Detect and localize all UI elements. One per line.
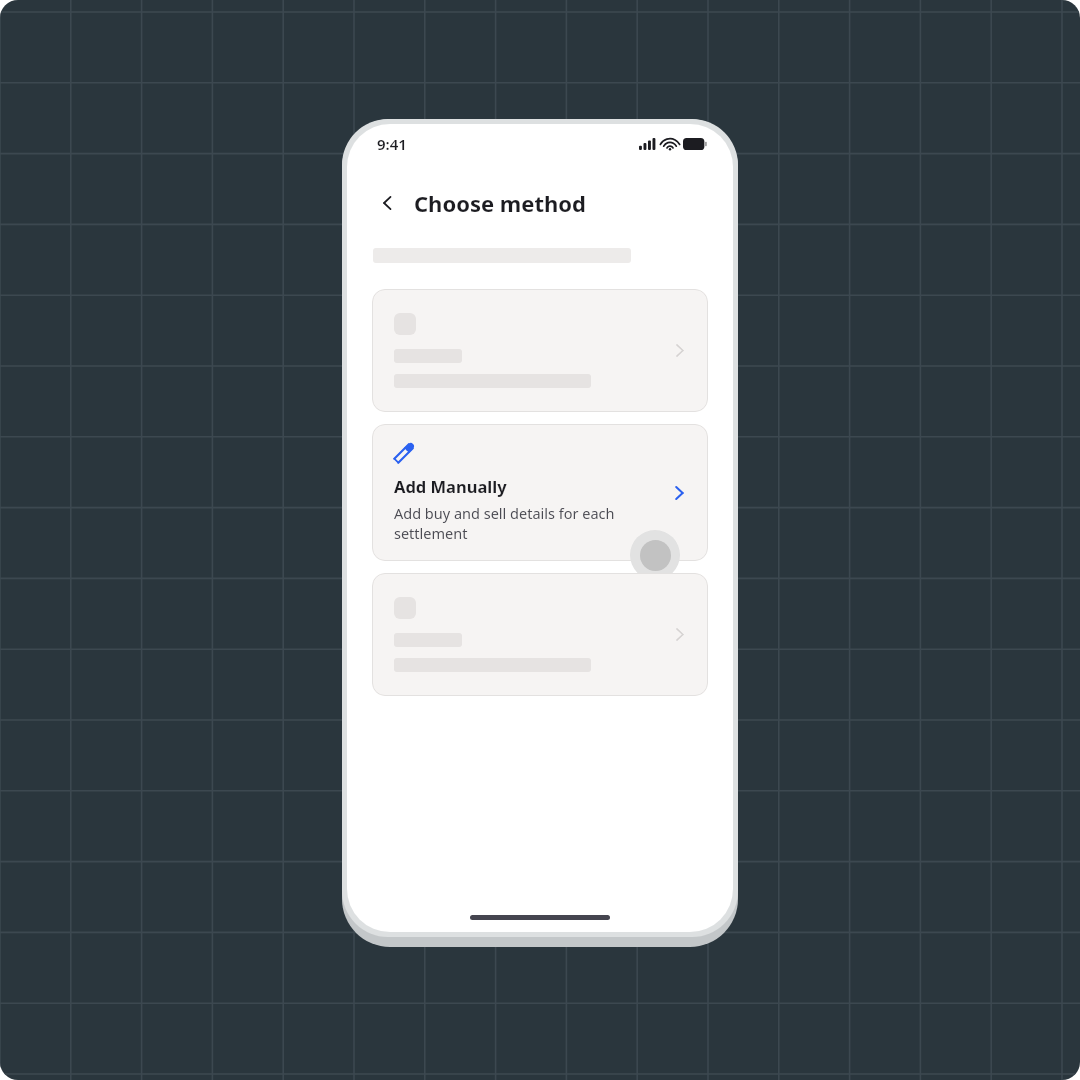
button[interactable]: Back — [371, 186, 405, 220]
button[interactable]: Add Manually — [372, 424, 708, 561]
staticText: Add buy and sell details for each settle… — [394, 503, 616, 544]
staticText: Add Manually — [394, 475, 507, 497]
staticText: Choose method — [414, 188, 586, 218]
staticText: 9:41 — [377, 134, 407, 154]
button[interactable] — [372, 573, 708, 696]
button[interactable] — [372, 289, 708, 412]
